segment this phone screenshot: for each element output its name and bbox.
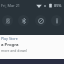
button[interactable]: Auto rotate <box>2 15 13 26</box>
staticText: 85% <box>54 3 62 8</box>
staticText: Play Store <box>1 36 18 41</box>
button[interactable]: Flashlight <box>51 15 62 26</box>
staticText: more and downl <box>1 48 28 53</box>
button[interactable]: Play Store <box>0 35 64 59</box>
button[interactable]: Bluetooth <box>18 15 29 26</box>
staticText: Fri, Mar 21 <box>1 3 20 8</box>
button[interactable]: Do not disturb <box>35 15 46 26</box>
staticText: a Progra <box>1 42 19 48</box>
